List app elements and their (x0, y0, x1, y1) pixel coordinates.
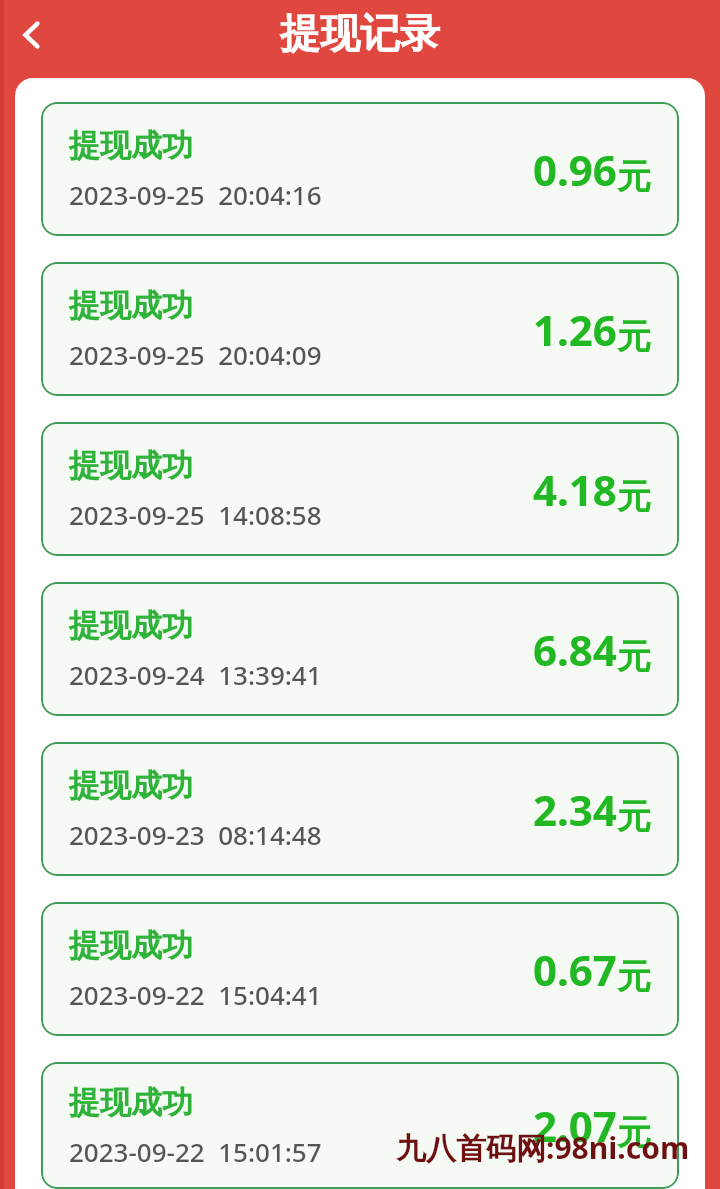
staticText: 元 (617, 795, 651, 838)
staticText: 4.18 (533, 461, 617, 518)
staticText: 0.67 (533, 941, 617, 998)
staticText: 2023-09-24 13:39:41 (69, 657, 322, 692)
button[interactable]: 提现成功 (41, 902, 679, 1036)
staticText: 6.84 (533, 621, 617, 678)
staticText: 提现成功 (69, 286, 193, 325)
button[interactable]: Back (0, 3, 64, 67)
staticText: 元 (617, 475, 651, 518)
staticText: 2023-09-25 20:04:09 (69, 337, 322, 372)
staticText: 元 (617, 1111, 651, 1154)
staticText: 2.07 (533, 1097, 617, 1154)
staticText: 0.96 (533, 141, 617, 198)
button[interactable]: 提现成功 (41, 1062, 679, 1189)
staticText: 元 (617, 315, 651, 358)
staticText: 2023-09-22 15:01:57 (69, 1134, 322, 1169)
staticText: 元 (617, 955, 651, 998)
button[interactable]: 提现成功 (41, 102, 679, 236)
staticText: 提现成功 (69, 446, 193, 485)
staticText: 提现成功 (69, 606, 193, 645)
staticText: 提现成功 (69, 926, 193, 965)
staticText: 2023-09-23 08:14:48 (69, 817, 322, 852)
staticText: 1.26 (533, 301, 617, 358)
staticText: 2023-09-25 20:04:16 (69, 177, 322, 212)
staticText: 提现记录 (0, 8, 720, 58)
staticText: 2.34 (533, 781, 617, 838)
staticText: 元 (617, 635, 651, 678)
staticText: 九八首码网:98ni.com (396, 1127, 690, 1168)
staticText: 提现成功 (69, 126, 193, 165)
staticText: 元 (617, 155, 651, 198)
staticText: 提现成功 (69, 1083, 193, 1122)
button[interactable]: 提现成功 (41, 262, 679, 396)
staticText: 2023-09-22 15:04:41 (69, 977, 322, 1012)
button[interactable]: 提现成功 (41, 582, 679, 716)
button[interactable]: 提现成功 (41, 422, 679, 556)
staticText: 提现成功 (69, 766, 193, 805)
staticText: 2023-09-25 14:08:58 (69, 497, 322, 532)
button[interactable]: 提现成功 (41, 742, 679, 876)
